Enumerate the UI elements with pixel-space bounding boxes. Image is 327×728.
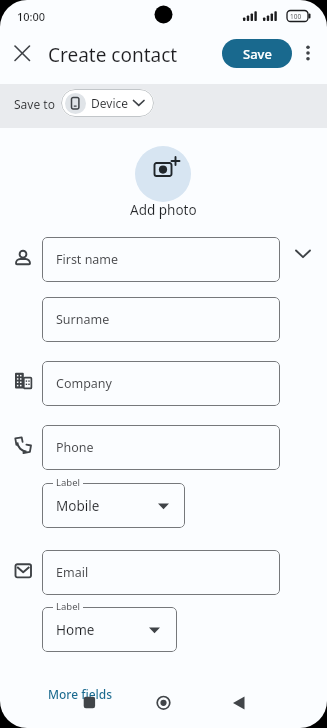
staticText: Mobile bbox=[56, 497, 100, 515]
button[interactable]: Home bbox=[42, 607, 177, 652]
button[interactable] bbox=[61, 684, 109, 724]
staticText: Label bbox=[56, 600, 80, 613]
staticText: Email bbox=[56, 564, 89, 581]
staticText: Surname bbox=[56, 311, 110, 328]
staticText: Add photo bbox=[130, 201, 197, 219]
button[interactable] bbox=[6, 37, 38, 69]
staticText: Home bbox=[56, 621, 95, 639]
button[interactable]: Phone bbox=[42, 425, 280, 470]
staticText: 10:00 bbox=[17, 9, 46, 24]
button[interactable] bbox=[217, 684, 265, 724]
button[interactable]: Email bbox=[42, 550, 280, 595]
staticText: Device bbox=[91, 95, 129, 111]
button[interactable] bbox=[296, 41, 320, 65]
button[interactable]: Device bbox=[61, 89, 154, 117]
button[interactable]: Surname bbox=[42, 297, 280, 342]
staticText: Save to bbox=[14, 96, 55, 112]
staticText: 100 bbox=[290, 12, 302, 21]
staticText: First name bbox=[56, 251, 119, 268]
button[interactable]: Add photo bbox=[113, 200, 214, 220]
button[interactable]: Company bbox=[42, 361, 280, 406]
staticText: Create contact bbox=[48, 42, 178, 68]
button[interactable] bbox=[288, 239, 318, 271]
staticText: Label bbox=[56, 476, 80, 489]
button[interactable]: First name bbox=[42, 237, 280, 282]
staticText: Company bbox=[56, 375, 112, 392]
staticText: More fields bbox=[48, 686, 113, 702]
button[interactable]: Save bbox=[222, 39, 292, 68]
staticText: Phone bbox=[56, 439, 94, 456]
staticText: Save bbox=[243, 45, 272, 63]
button[interactable] bbox=[139, 684, 187, 724]
button[interactable]: Mobile bbox=[42, 483, 185, 528]
button[interactable]: More fields bbox=[35, 681, 125, 707]
button[interactable] bbox=[135, 146, 191, 202]
